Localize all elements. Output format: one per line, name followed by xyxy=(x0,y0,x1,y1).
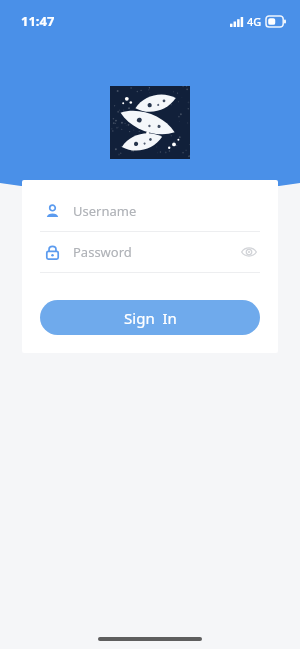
button[interactable]: Password xyxy=(40,232,260,272)
staticText: Sign In xyxy=(124,308,177,328)
staticText: 4G xyxy=(247,14,262,29)
button[interactable]: Username xyxy=(40,191,260,231)
staticText: 11:47 xyxy=(21,12,55,30)
button[interactable]: Show password xyxy=(238,241,260,263)
staticText: Password xyxy=(73,243,132,261)
button[interactable]: Sign In xyxy=(40,300,260,335)
staticText: Username xyxy=(73,202,137,220)
